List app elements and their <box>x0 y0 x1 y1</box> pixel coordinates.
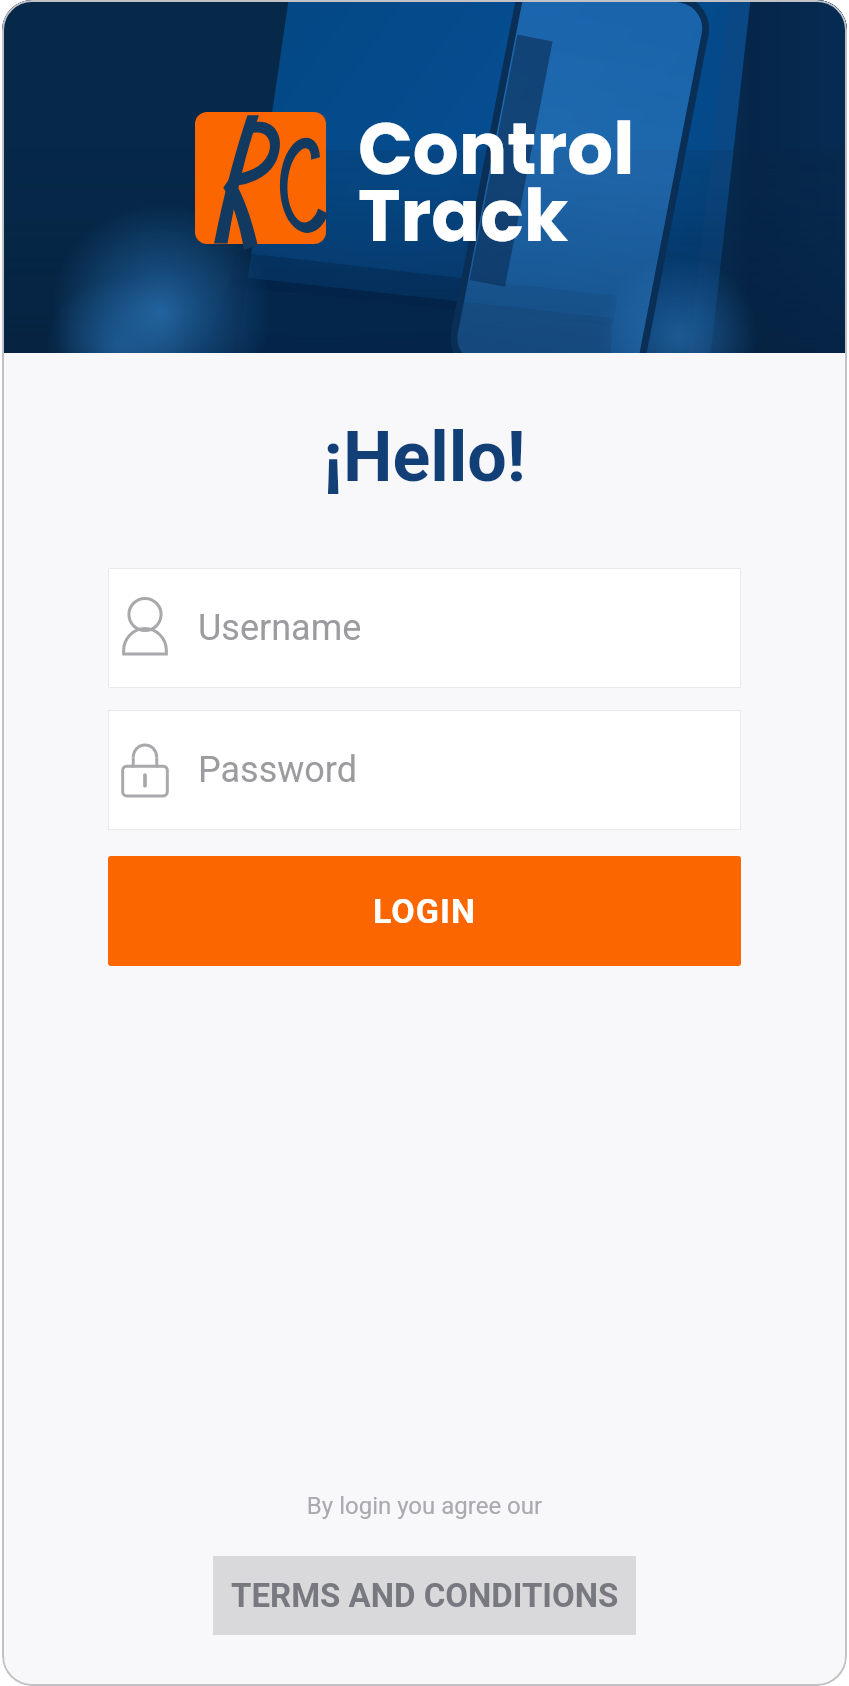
staticText: Control <box>358 98 635 199</box>
other: Username <box>121 601 169 656</box>
button[interactable]: Password <box>108 710 741 830</box>
staticText: ¡Hello! <box>2 416 847 498</box>
button[interactable]: Username <box>108 568 741 688</box>
staticText: LOGIN <box>373 891 476 931</box>
other: Password <box>121 743 169 797</box>
staticText: Password <box>198 749 358 791</box>
button[interactable]: TERMS AND CONDITIONS <box>213 1556 636 1635</box>
staticText: Track <box>358 165 569 266</box>
staticText: Username <box>198 607 362 649</box>
staticText: By login you agree our <box>2 1492 847 1520</box>
staticText: TERMS AND CONDITIONS <box>231 1576 619 1615</box>
button[interactable]: LOGIN <box>108 856 741 966</box>
